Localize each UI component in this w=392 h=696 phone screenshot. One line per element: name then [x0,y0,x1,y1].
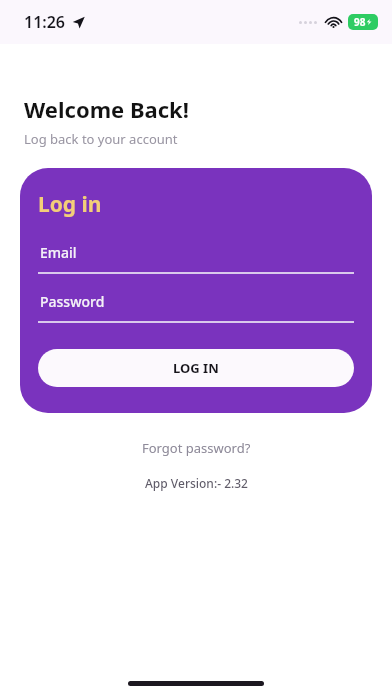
staticText: Welcome Back! [24,94,189,124]
button[interactable]: Password [38,292,354,323]
staticText: LOG IN [173,359,219,377]
button[interactable]: LOG IN [38,349,354,387]
staticText: Forgot password? [142,439,251,457]
button[interactable]: Forgot password? [132,435,261,461]
staticText: Email [40,243,77,262]
staticText: Log back to your account [24,130,178,148]
staticText: App Version:- 2.32 [145,475,248,491]
staticText: 98 [354,15,366,29]
staticText: Log in [38,190,102,219]
staticText: Password [40,292,105,311]
button[interactable]: Email [38,243,354,274]
staticText: 11:26 [24,11,66,33]
